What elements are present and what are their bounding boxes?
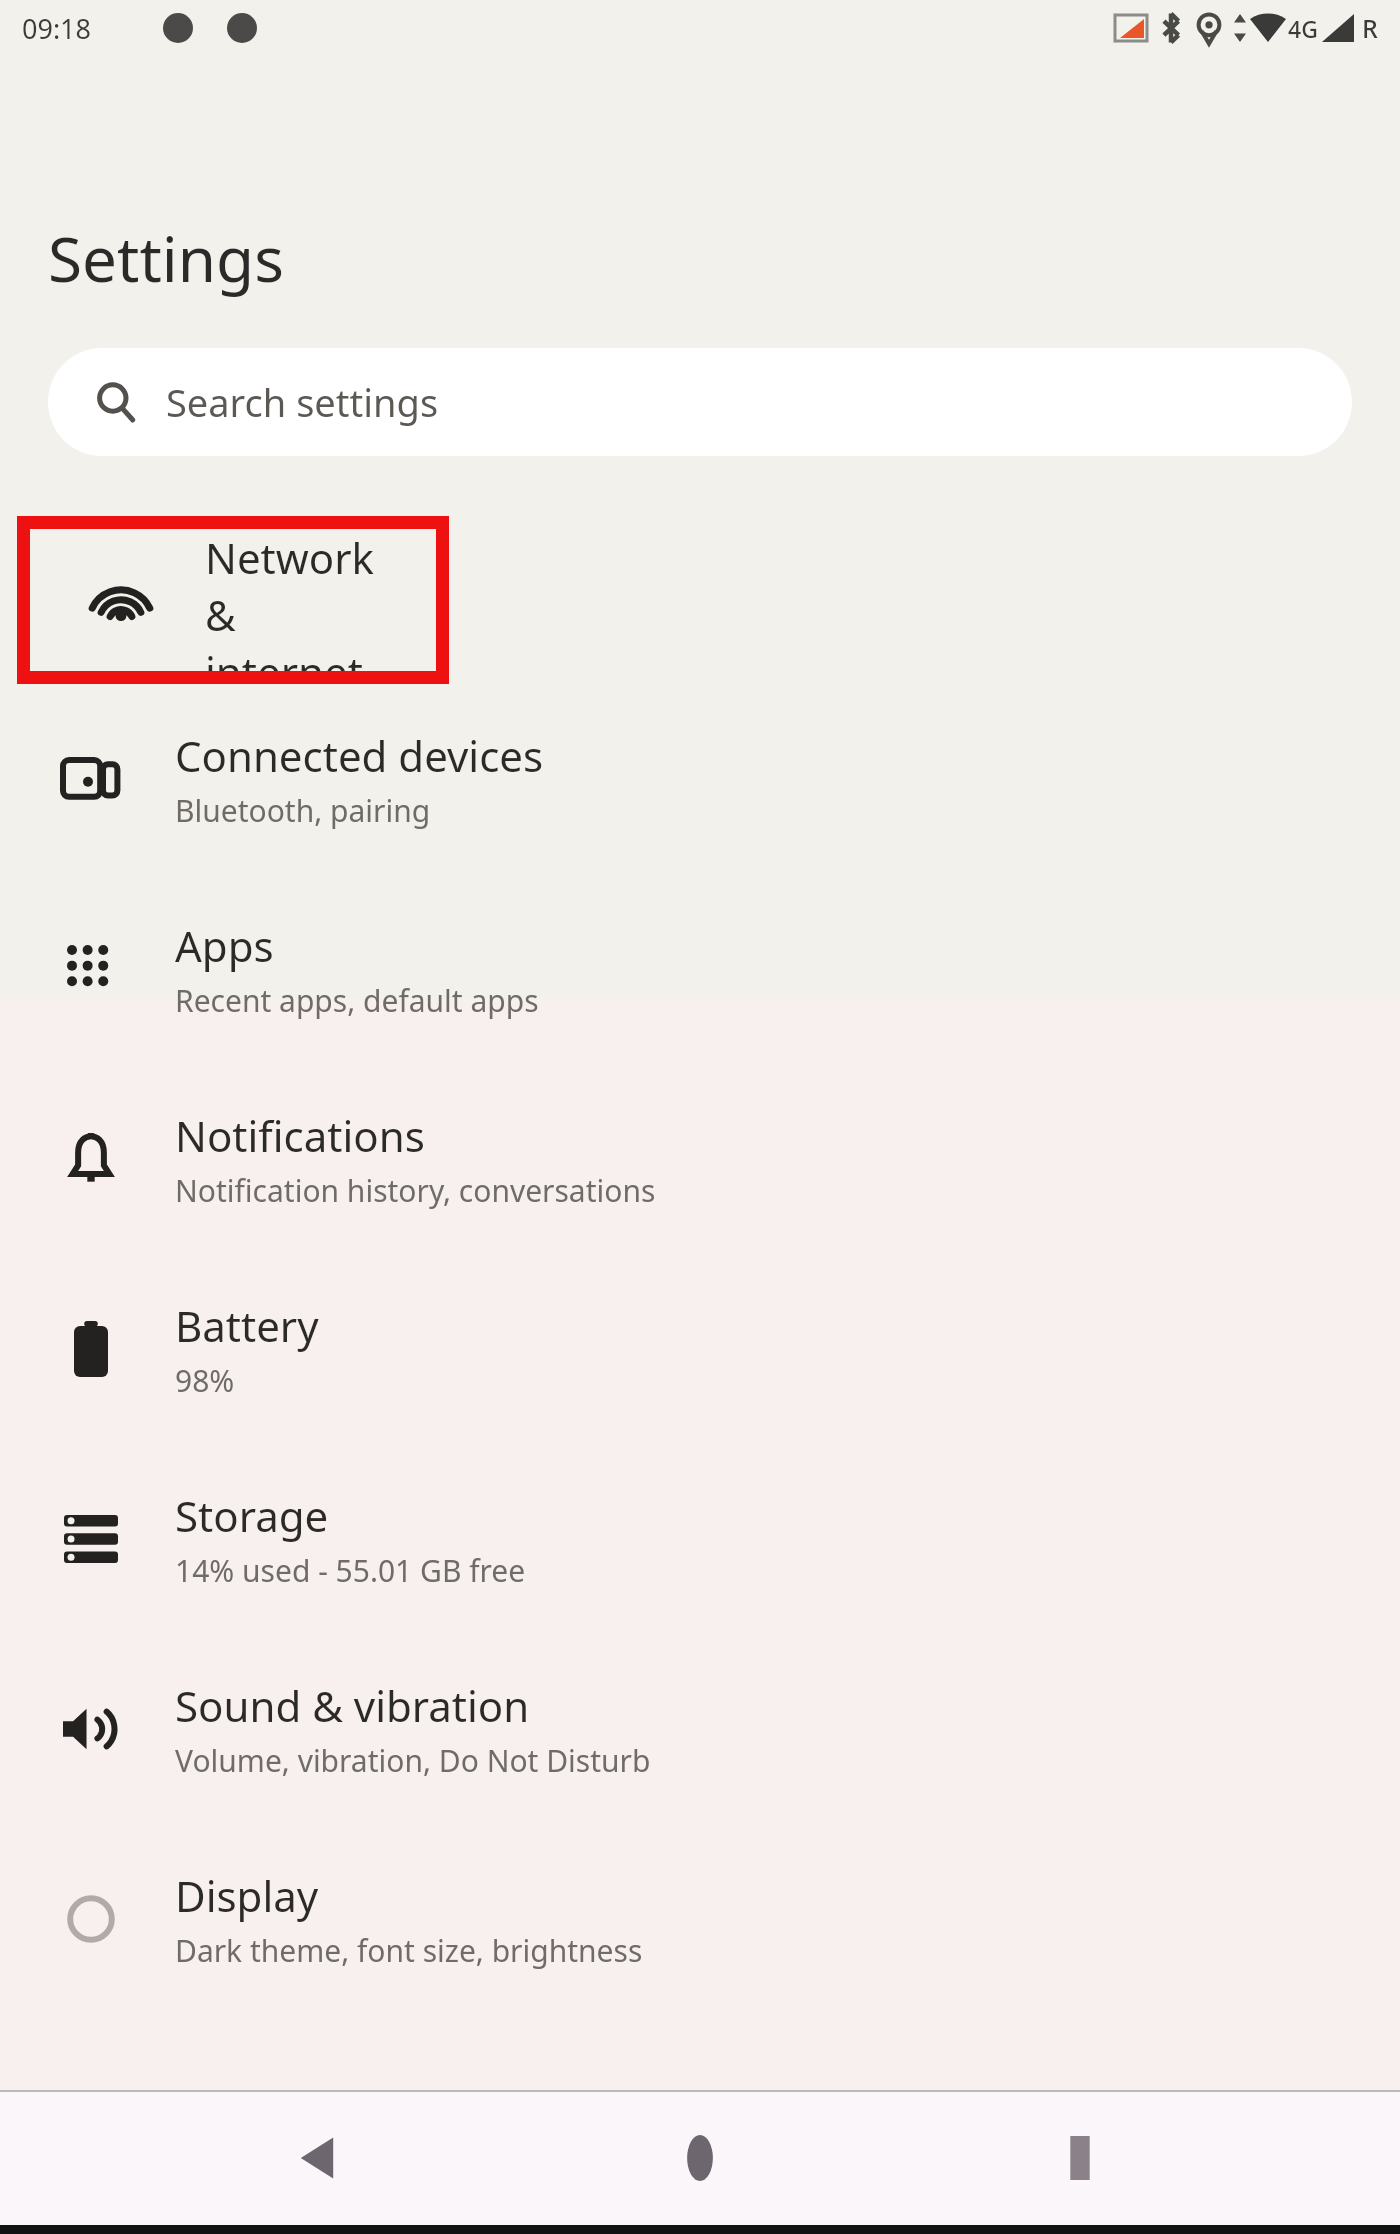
staticText: Storage [175, 1487, 329, 1544]
staticText: Settings [48, 216, 284, 300]
staticText: Sound & vibration [175, 1677, 530, 1734]
staticText: Bluetooth, pairing [175, 790, 431, 831]
staticText: Connected devices [175, 727, 544, 784]
button[interactable]: Search settings [48, 348, 1352, 456]
staticText: Battery [175, 1297, 319, 1354]
staticText: Notifications [175, 1107, 425, 1164]
button[interactable]: Home [640, 2098, 760, 2218]
staticText: Search settings [166, 376, 439, 428]
staticText: R [1362, 11, 1378, 45]
staticText: Apps [175, 917, 274, 974]
staticText: Notification history, conversations [175, 1170, 656, 1211]
staticText: Volume, vibration, Do Not Disturb [175, 1740, 651, 1781]
button[interactable]: Back [260, 2098, 380, 2218]
button[interactable]: Notifications [0, 1064, 1400, 1254]
button[interactable]: Battery [0, 1254, 1400, 1444]
button[interactable]: Display [0, 1824, 1400, 2014]
staticText: 09:18 [22, 10, 92, 47]
staticText: 14% used - 55.01 GB free [175, 1550, 526, 1591]
button[interactable]: Recent apps [1020, 2098, 1140, 2218]
staticText: 98% [175, 1360, 235, 1401]
button[interactable]: Storage [0, 1444, 1400, 1634]
button[interactable]: Connected devices [0, 684, 1400, 874]
staticText: 4G [1288, 13, 1318, 44]
staticText: Display [175, 1867, 319, 1924]
staticText: Dark theme, font size, brightness [175, 1930, 643, 1971]
button[interactable]: Sound & vibration [0, 1634, 1400, 1824]
button[interactable]: Apps [0, 874, 1400, 1064]
staticText: Recent apps, default apps [175, 980, 539, 1021]
staticText: Network & internet [205, 529, 396, 671]
